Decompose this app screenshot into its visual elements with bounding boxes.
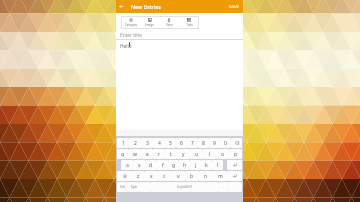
button[interactable]: Image: [140, 16, 159, 29]
staticText: New Entries: [131, 3, 161, 10]
staticText: 4: [158, 140, 161, 147]
staticText: Ctrl: [120, 185, 125, 189]
staticText: 2: [134, 140, 137, 147]
staticText: c: [163, 173, 166, 180]
staticText: h: [183, 162, 187, 169]
staticText: s: [138, 162, 141, 169]
button[interactable]: SAVE: [225, 1, 243, 13]
button[interactable]: y: [177, 149, 190, 159]
staticText: q: [121, 151, 125, 158]
staticText: Category: [125, 23, 137, 27]
staticText: u: [195, 151, 199, 158]
button[interactable]: p: [229, 149, 242, 159]
staticText: g: [172, 162, 176, 169]
staticText: 7: [191, 140, 194, 147]
button[interactable]: m: [213, 171, 227, 181]
staticText: 8: [202, 140, 205, 147]
staticText: b: [190, 173, 194, 180]
staticText: r: [158, 151, 161, 158]
button[interactable]: q: [117, 149, 129, 159]
staticText: 5: [169, 140, 172, 147]
button[interactable]: Todo: [179, 16, 199, 29]
button[interactable]: 2: [129, 138, 141, 148]
button[interactable]: l: [212, 160, 223, 170]
staticText: a: [126, 162, 129, 169]
button[interactable]: 9: [209, 138, 220, 148]
button[interactable]: o: [216, 149, 229, 159]
button[interactable]: back: [227, 160, 242, 170]
staticText: x: [150, 173, 153, 180]
staticText: Todo: [186, 23, 193, 27]
button[interactable]: r: [153, 149, 165, 159]
staticText: Hello: [120, 43, 132, 50]
button[interactable]: Voice: [159, 16, 179, 29]
button[interactable]: 1: [117, 138, 129, 148]
button[interactable]: b: [185, 171, 199, 181]
button[interactable]: Ctrl: [117, 182, 128, 192]
button[interactable]: k: [201, 160, 212, 170]
staticText: 1: [122, 140, 125, 147]
button[interactable]: u: [190, 149, 203, 159]
button[interactable]: Category: [121, 16, 140, 29]
button[interactable]: 4: [153, 138, 165, 148]
staticText: y: [182, 151, 185, 158]
button[interactable]: c: [158, 171, 171, 181]
button[interactable]: Back: [116, 0, 127, 13]
staticText: n: [204, 173, 208, 180]
staticText: t: [170, 151, 172, 158]
staticText: e: [146, 151, 149, 158]
staticText: v: [177, 173, 180, 180]
staticText: p: [234, 151, 238, 158]
button[interactable]: h: [179, 160, 190, 170]
button[interactable]: z: [132, 171, 145, 181]
staticText: l: [217, 162, 219, 169]
button[interactable]: Sym: [128, 182, 139, 192]
button[interactable]: 5: [165, 138, 176, 148]
button[interactable]: d: [145, 160, 157, 170]
button[interactable]: w: [129, 149, 141, 159]
button[interactable]: del: [231, 138, 242, 148]
staticText: m: [218, 173, 223, 180]
button[interactable]: e: [141, 149, 153, 159]
button[interactable]: 6: [176, 138, 187, 148]
staticText: 6: [180, 140, 183, 147]
staticText: Voice: [166, 23, 173, 27]
staticText: Image: [145, 23, 154, 27]
staticText: 3: [146, 140, 149, 147]
button[interactable]: 7: [187, 138, 198, 148]
button[interactable]: j: [190, 160, 201, 170]
button[interactable]: back: [227, 171, 242, 181]
staticText: Sym: [131, 185, 137, 189]
staticText: 9: [213, 140, 216, 147]
staticText: i: [209, 151, 211, 158]
staticText: Enter title: [120, 32, 142, 39]
staticText: SAVE: [229, 4, 239, 10]
button[interactable]: 8: [198, 138, 209, 148]
button[interactable]: shift: [117, 171, 132, 181]
staticText: k: [205, 162, 208, 169]
staticText: d: [149, 162, 153, 169]
button[interactable]: a: [121, 160, 133, 170]
button[interactable]: f: [157, 160, 168, 170]
button[interactable]: s: [133, 160, 145, 170]
button[interactable]: English(US): [150, 182, 218, 192]
staticText: f: [162, 162, 164, 169]
button[interactable]: 3: [141, 138, 153, 148]
staticText: z: [137, 173, 140, 180]
button[interactable]: .: [218, 182, 229, 192]
staticText: o: [221, 151, 225, 158]
button[interactable]: n: [199, 171, 213, 181]
button[interactable]: g: [168, 160, 179, 170]
button[interactable]: i: [203, 149, 216, 159]
button[interactable]: t: [165, 149, 177, 159]
staticText: .: [223, 185, 224, 189]
button[interactable]: 0: [220, 138, 231, 148]
staticText: w: [133, 151, 137, 158]
button[interactable]: x: [145, 171, 158, 181]
staticText: j: [195, 162, 197, 169]
staticText: English(US): [177, 185, 192, 189]
staticText: 0: [224, 140, 227, 147]
button[interactable]: v: [171, 171, 185, 181]
